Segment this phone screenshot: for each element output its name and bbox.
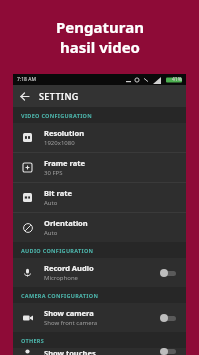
staticText: AUDIO CONFIGURATION <box>21 247 94 254</box>
staticText: Auto <box>44 199 58 207</box>
staticText: Resolution <box>44 128 85 138</box>
staticText: Record Audio <box>44 263 94 273</box>
staticText: Bit rate <box>44 188 72 198</box>
staticText: OTHERS <box>21 337 45 344</box>
staticText: Show touches <box>44 348 96 355</box>
button[interactable]: Record Audio <box>13 258 186 287</box>
button[interactable]: Resolution <box>13 123 186 152</box>
staticText: Show camera <box>44 308 94 318</box>
button[interactable]: Show camera <box>13 303 186 332</box>
button[interactable]: Show touches <box>13 348 186 355</box>
button[interactable]: Frame rate <box>13 153 186 182</box>
button[interactable]: Show touches toggle <box>160 348 178 355</box>
button[interactable]: Bit rate <box>13 183 186 212</box>
button[interactable]: Orientation <box>13 213 186 242</box>
staticText: 30 FPS <box>44 169 63 177</box>
staticText: VIDEO CONFIGURATION <box>21 112 93 119</box>
button[interactable]: Show camera toggle <box>160 313 178 323</box>
staticText: hasil video <box>60 37 140 57</box>
staticText: Microphone <box>44 274 78 282</box>
staticText: Pengaturan <box>56 17 144 37</box>
staticText: 1920x1080 <box>44 139 75 147</box>
staticText: 7:18 AM <box>17 76 36 83</box>
staticText: CAMERA CONFIGURATION <box>21 292 99 299</box>
staticText: Auto <box>44 229 58 237</box>
staticText: Show front camera <box>44 319 98 327</box>
staticText: 41% <box>172 76 182 83</box>
button[interactable]: Back <box>13 85 35 107</box>
staticText: SETTING <box>39 90 79 102</box>
staticText: Orientation <box>44 218 88 228</box>
button[interactable]: Record Audio toggle <box>160 268 178 278</box>
staticText: Frame rate <box>44 158 85 168</box>
